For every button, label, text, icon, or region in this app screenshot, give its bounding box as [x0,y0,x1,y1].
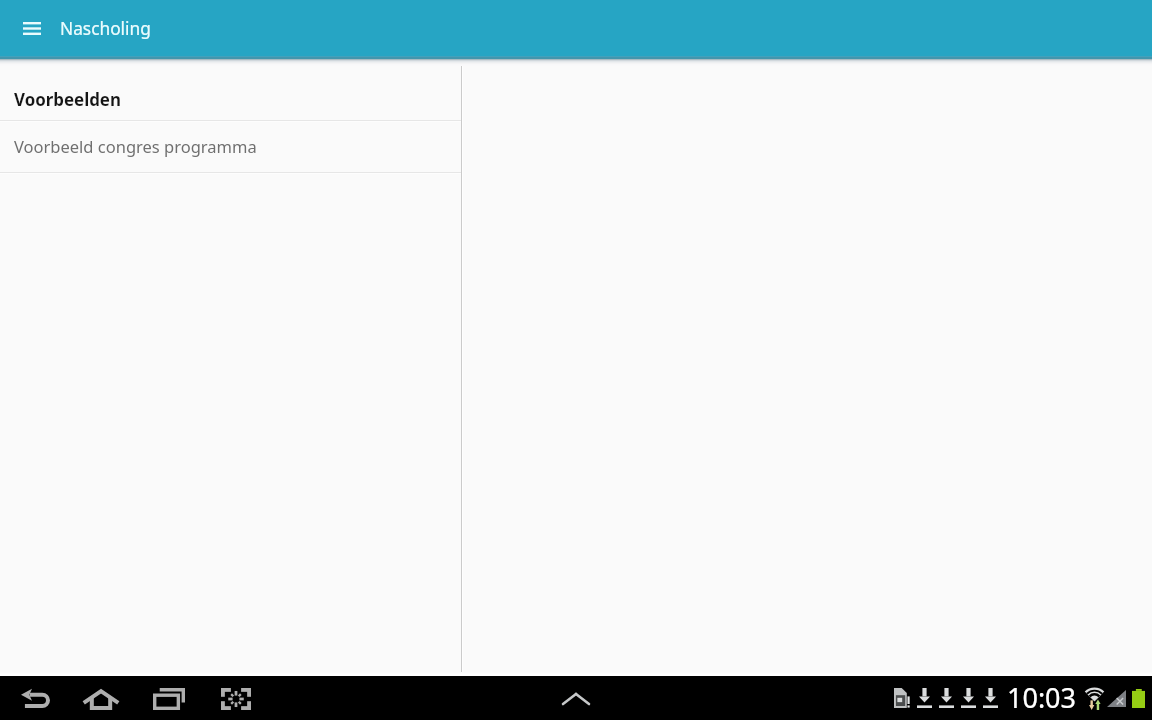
button[interactable]: Show notifications [554,677,598,720]
button[interactable]: Screenshot [214,677,258,720]
button[interactable]: Voorbeeld congres programma [0,122,461,172]
button[interactable]: Home [79,677,123,720]
staticText: Voorbeelden [14,88,121,111]
button[interactable]: Back [13,677,57,720]
staticText: 10:03 [1007,679,1077,716]
button[interactable]: Voorbeelden [0,56,461,120]
button[interactable]: Open navigation drawer [10,6,54,50]
button[interactable]: Recent apps [147,677,191,720]
staticText: Voorbeeld congres programma [14,135,257,157]
staticText: Nascholing [60,17,151,41]
